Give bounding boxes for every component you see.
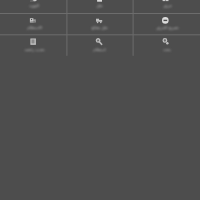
button[interactable]: استعلام <box>66 34 132 55</box>
staticText: الاستعلام <box>27 25 42 30</box>
staticText: نقل بضائع <box>91 25 108 30</box>
button[interactable]: نقل بضائع <box>66 13 132 34</box>
button[interactable]: نقل <box>66 0 132 12</box>
staticText: تصريح المرور <box>156 25 179 30</box>
button[interactable]: الهوية <box>0 0 66 12</box>
staticText: مرور <box>163 3 172 8</box>
button[interactable]: مرور <box>133 0 200 12</box>
button[interactable]: تجديد رخصة <box>0 34 66 55</box>
button[interactable]: تصريح المرور <box>133 13 200 34</box>
button[interactable]: بحث <box>133 34 200 55</box>
staticText: الهوية <box>29 3 39 8</box>
staticText: بحث <box>163 47 171 52</box>
staticText: استعلام <box>93 47 106 52</box>
staticText: نقل <box>96 3 103 8</box>
staticText: تجديد رخصة <box>24 47 45 52</box>
button[interactable]: الاستعلام <box>0 13 66 34</box>
